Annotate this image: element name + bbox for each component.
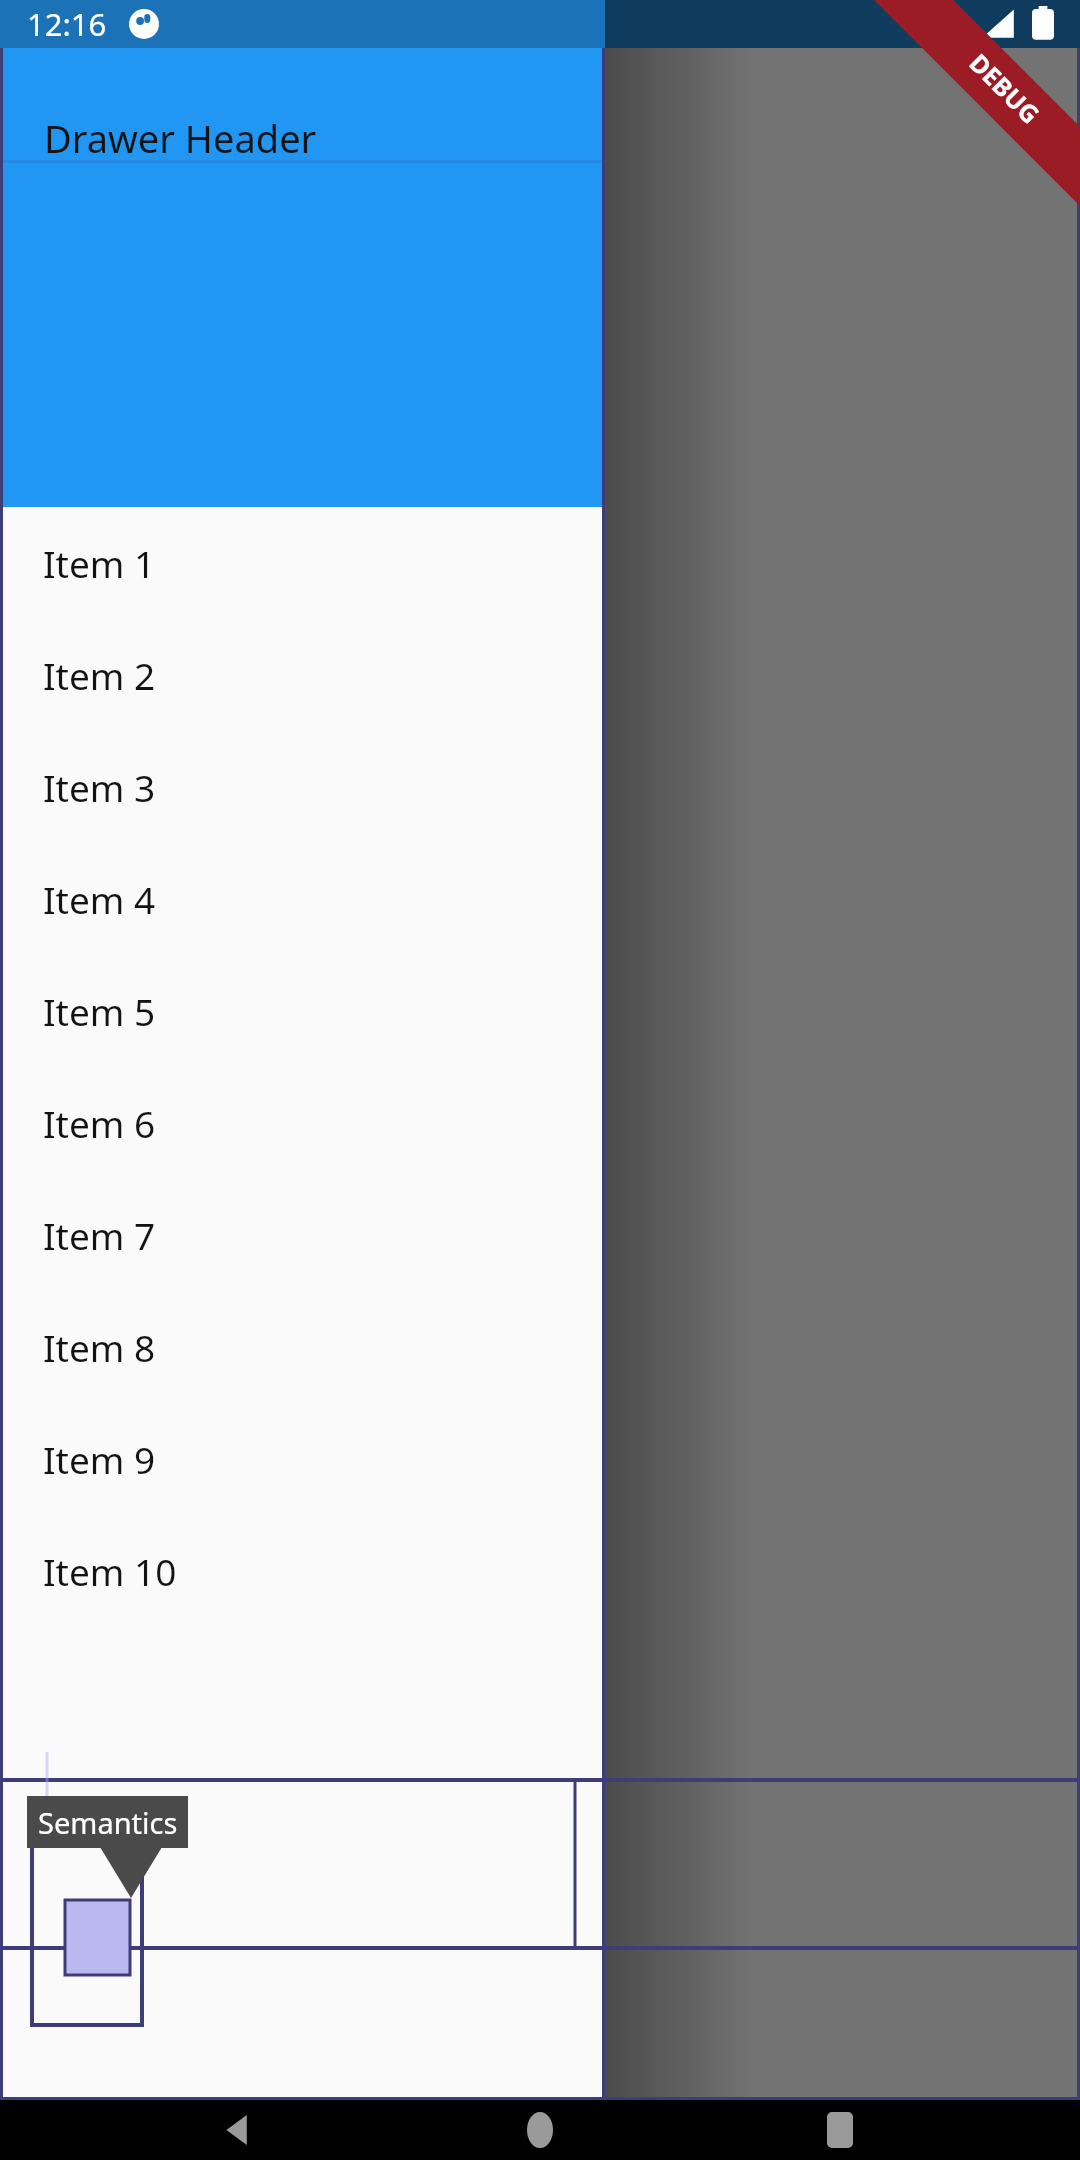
button[interactable]: Item 1: [0, 507, 605, 619]
staticText: Semantics: [38, 1803, 178, 1842]
button[interactable]: Home: [465, 2100, 615, 2160]
button[interactable]: Item 6: [0, 1067, 605, 1179]
button[interactable]: Item 4: [0, 843, 605, 955]
staticText: Item 8: [43, 1322, 156, 1372]
staticText: DEBUG: [963, 46, 1047, 130]
button[interactable]: Item 10: [0, 1515, 605, 1627]
staticText: Item 7: [43, 1210, 156, 1260]
button[interactable]: Item 7: [0, 1179, 605, 1291]
staticText: Item 1: [43, 538, 156, 588]
button[interactable]: Item 3: [0, 731, 605, 843]
staticText: Item 9: [43, 1434, 156, 1484]
staticText: Item 4: [43, 874, 156, 924]
button[interactable]: Drawer Header: [0, 0, 605, 507]
button[interactable]: Item 9: [0, 1403, 605, 1515]
staticText: Item 3: [43, 762, 156, 812]
staticText: Item 6: [43, 1098, 156, 1148]
staticText: 12:16: [27, 3, 107, 45]
button[interactable]: Item 8: [0, 1291, 605, 1403]
staticText: Item 5: [43, 986, 156, 1036]
staticText: Item 2: [43, 650, 156, 700]
button[interactable]: Back: [165, 2100, 315, 2160]
button[interactable]: Item 2: [0, 619, 605, 731]
staticText: Item 10: [43, 1546, 177, 1596]
button[interactable]: Recent apps: [765, 2100, 915, 2160]
button[interactable]: Item 5: [0, 955, 605, 1067]
staticText: Drawer Header: [44, 112, 317, 164]
